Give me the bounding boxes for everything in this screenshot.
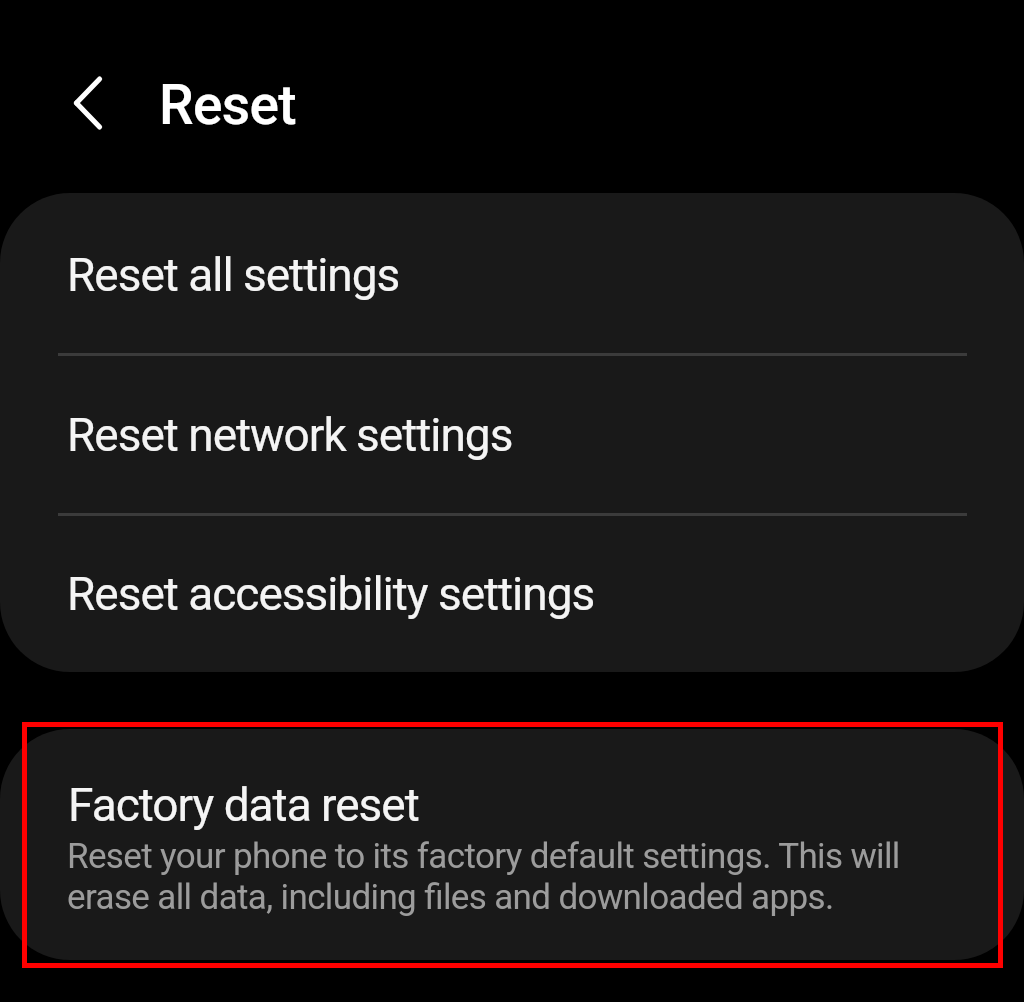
staticText: Reset your phone to its factory default … <box>67 836 937 917</box>
button[interactable]: Factory data reset <box>0 729 1024 960</box>
button[interactable]: Reset accessibility settings <box>0 512 1024 672</box>
button[interactable]: Reset all settings <box>0 193 1024 353</box>
staticText: Reset <box>159 73 296 137</box>
staticText: Reset accessibility settings <box>67 567 595 621</box>
staticText: Reset all settings <box>67 248 400 302</box>
button[interactable]: Reset network settings <box>0 353 1024 513</box>
staticText: Reset network settings <box>67 408 513 462</box>
button[interactable]: Navigate up <box>47 62 129 144</box>
staticText: Factory data reset <box>68 778 419 832</box>
